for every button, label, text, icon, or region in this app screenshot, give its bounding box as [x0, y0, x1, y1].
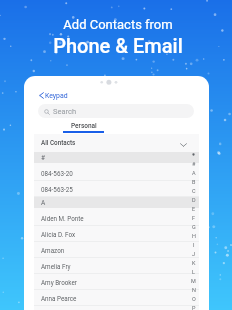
staticText: E — [192, 206, 196, 212]
staticText: Alicia D. Fox — [41, 231, 76, 238]
staticText: Add Contacts from — [63, 17, 173, 32]
staticText: # — [192, 161, 196, 167]
button[interactable]: Anna Pearce — [34, 290, 199, 306]
button[interactable]: Keypad — [39, 90, 68, 101]
staticText: P — [192, 305, 196, 310]
staticText: A — [41, 199, 46, 207]
staticText: A — [192, 170, 196, 176]
staticText: 084-563-25 — [41, 186, 73, 193]
staticText: 084-563-20 — [41, 170, 73, 177]
button[interactable]: Search — [38, 104, 194, 118]
staticText: M — [191, 278, 196, 284]
button[interactable]: 084-563-20 — [34, 165, 199, 181]
staticText: # — [41, 154, 46, 162]
staticText: N — [192, 287, 196, 293]
button[interactable]: Amy Brooker — [34, 274, 199, 290]
staticText: Search — [53, 107, 77, 116]
staticText: Alden M. Ponte — [41, 215, 84, 222]
staticText: Amy Brooker — [41, 279, 77, 286]
staticText: Amelia Fry — [41, 263, 71, 270]
staticText: All Contacts — [41, 139, 76, 146]
button[interactable]: 084-563-25 — [34, 181, 199, 197]
staticText: C — [192, 188, 196, 194]
staticText: D — [192, 197, 196, 203]
button[interactable]: All Contacts — [41, 137, 187, 148]
staticText: G — [192, 224, 196, 230]
staticText: Phone & Email — [53, 34, 183, 57]
staticText: L — [192, 269, 195, 275]
other: Alphabet index — [189, 150, 198, 310]
button[interactable]: Personal — [63, 122, 104, 133]
staticText: Amazon — [41, 247, 65, 254]
staticText: Personal — [71, 122, 97, 130]
button[interactable]: Alden M. Ponte — [34, 210, 199, 226]
staticText: O — [192, 296, 196, 302]
button[interactable]: Amazon — [34, 242, 199, 258]
button[interactable]: Amelia Fry — [34, 258, 199, 274]
staticText: Anna Pearce — [41, 295, 77, 302]
staticText: K — [192, 260, 196, 266]
staticText: Keypad — [45, 92, 68, 100]
staticText: B — [192, 179, 196, 185]
staticText: H — [192, 233, 196, 239]
staticText: I — [193, 242, 195, 248]
staticText: J — [192, 251, 196, 257]
button[interactable]: Alicia D. Fox — [34, 226, 199, 242]
staticText: F — [192, 215, 196, 221]
